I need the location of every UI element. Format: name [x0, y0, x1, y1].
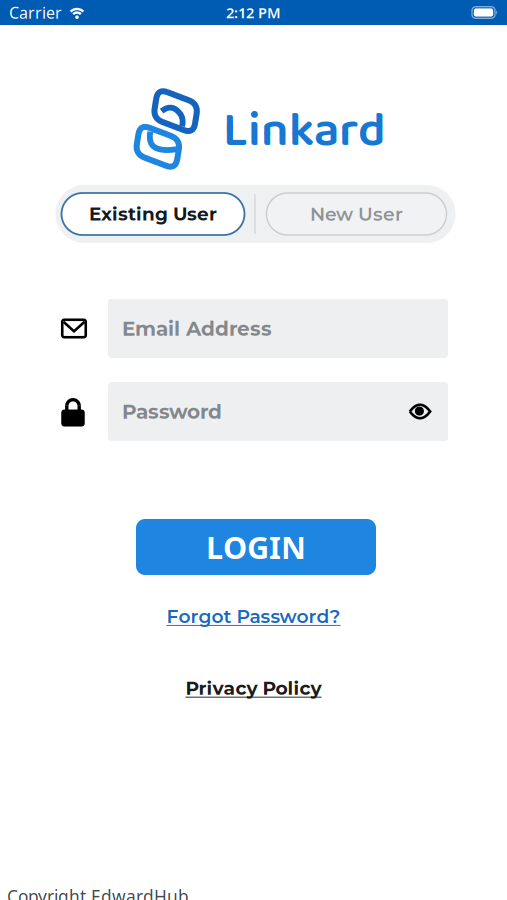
staticText: Copyright EdwardHub — [7, 885, 189, 900]
staticText: New User — [310, 203, 403, 225]
staticText: Password — [122, 399, 222, 424]
button[interactable]: Forgot Password? — [166, 605, 340, 628]
staticText: Email Address — [122, 316, 272, 341]
button[interactable]: Existing User — [61, 193, 244, 235]
button[interactable]: Show Password — [409, 403, 431, 419]
staticText: LOGIN — [206, 527, 306, 567]
staticText: Privacy Policy — [185, 677, 321, 700]
button[interactable]: New User — [266, 193, 446, 235]
staticText: Carrier — [9, 2, 62, 23]
staticText: Linkard — [223, 92, 386, 170]
staticText: Existing User — [89, 203, 217, 225]
staticText: 2:12 PM — [226, 3, 281, 22]
button[interactable]: LOGIN — [136, 519, 376, 575]
staticText: Forgot Password? — [166, 605, 340, 628]
button[interactable]: Privacy Policy — [185, 677, 321, 700]
